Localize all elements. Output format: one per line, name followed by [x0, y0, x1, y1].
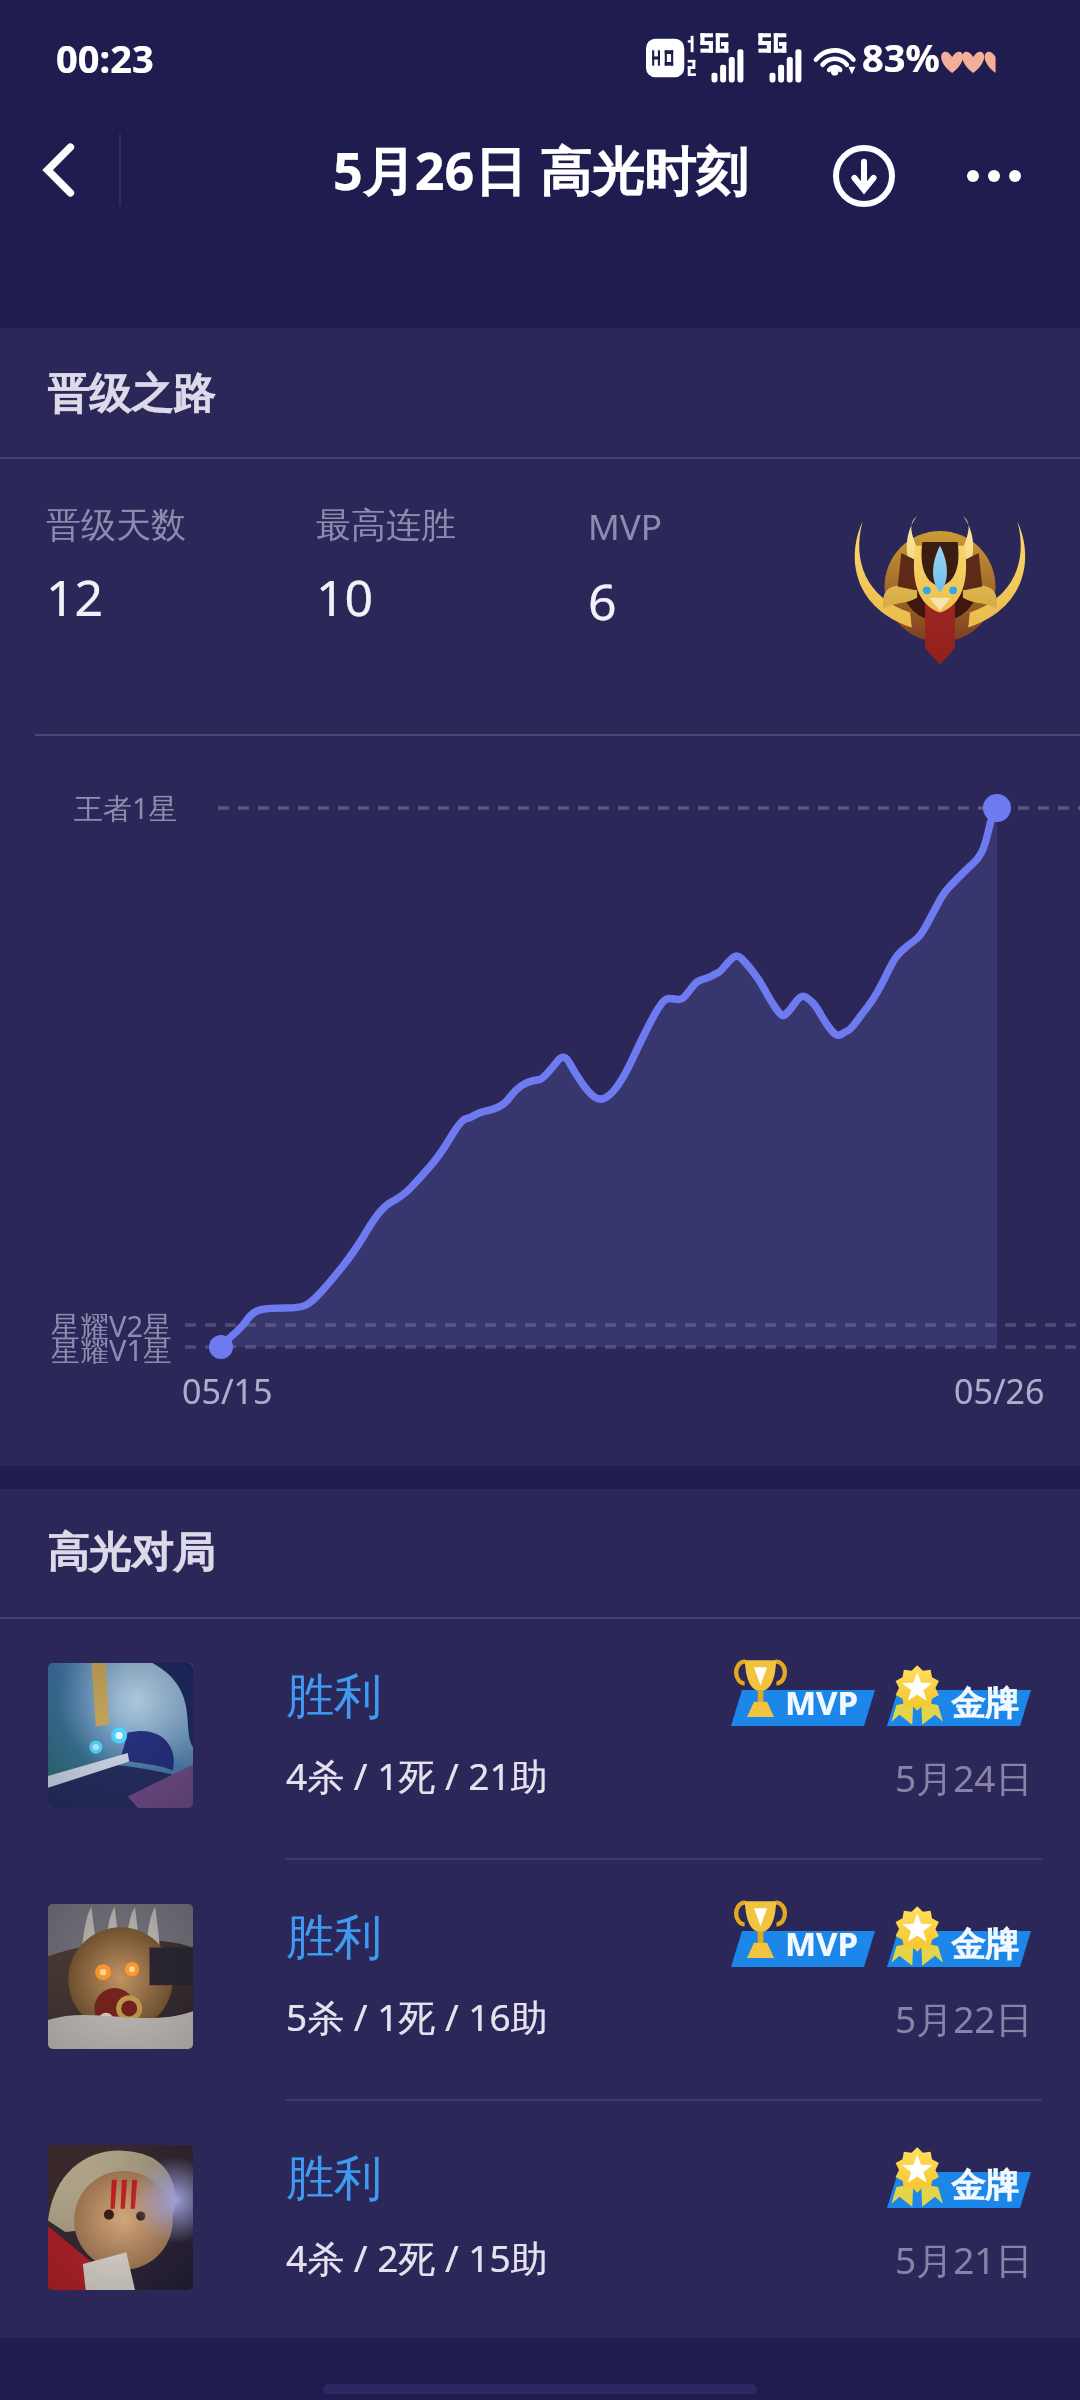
staticText: 10	[316, 563, 374, 631]
staticText: 胜利	[286, 1908, 382, 1968]
staticText: MVP	[785, 1921, 859, 1966]
staticText: 4杀 / 2死 / 15助	[286, 2232, 548, 2283]
staticText: 晋级之路	[47, 368, 215, 421]
staticText: 05/26	[954, 1368, 1045, 1414]
staticText: 晋级天数	[46, 503, 186, 547]
button[interactable]: Download	[804, 116, 924, 236]
staticText: 83%	[862, 31, 940, 83]
button[interactable]: More options	[935, 116, 1053, 236]
staticText: 高光对局	[47, 1527, 215, 1580]
staticText: 王者1星	[74, 788, 178, 828]
staticText: 星耀V1星	[51, 1330, 172, 1370]
button[interactable]: 胜利	[0, 1860, 1080, 2099]
staticText: 最高连胜	[316, 503, 456, 547]
staticText: 5月26日 高光时刻	[333, 134, 748, 205]
staticText: 金牌	[951, 1923, 1019, 1966]
staticText: MVP	[785, 1680, 859, 1725]
staticText: 5月24日	[895, 1752, 1033, 1803]
staticText: 00:23	[56, 32, 154, 84]
staticText: 05/15	[182, 1368, 273, 1414]
staticText: 5月22日	[895, 1993, 1033, 2044]
button[interactable]: 胜利	[0, 2101, 1080, 2340]
staticText: 5杀 / 1死 / 16助	[286, 1991, 548, 2042]
staticText: 胜利	[286, 1667, 382, 1727]
staticText: 星耀V2星	[51, 1306, 172, 1346]
staticText: 12	[46, 563, 104, 631]
staticText: 胜利	[286, 2149, 382, 2209]
staticText: 5月21日	[895, 2234, 1033, 2285]
staticText: 金牌	[951, 2164, 1019, 2207]
staticText: 金牌	[951, 1682, 1019, 1725]
staticText: 4杀 / 1死 / 21助	[286, 1750, 548, 1801]
staticText: 6	[588, 567, 617, 635]
button[interactable]: 胜利	[0, 1619, 1080, 1858]
button[interactable]: Back	[0, 120, 118, 240]
staticText: MVP	[588, 503, 662, 551]
